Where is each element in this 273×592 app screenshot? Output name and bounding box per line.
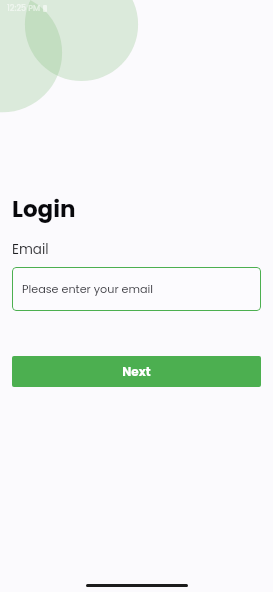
button[interactable]: Next: [12, 356, 261, 387]
staticText: 12:25 PM: [7, 3, 40, 14]
staticText: Please enter your email: [22, 281, 154, 297]
staticText: Login: [12, 193, 76, 225]
staticText: Email: [12, 240, 49, 259]
staticText: Next: [122, 363, 151, 380]
button[interactable]: Please enter your email: [12, 267, 261, 311]
